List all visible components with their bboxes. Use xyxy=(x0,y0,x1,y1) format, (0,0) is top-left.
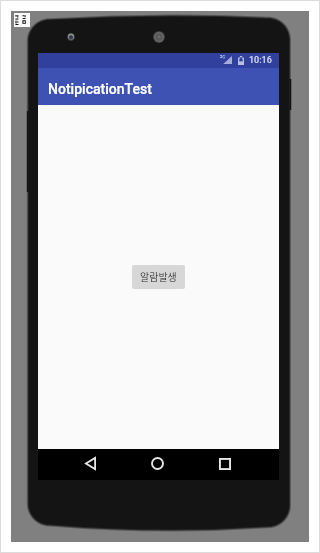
staticText: 알람발생 xyxy=(140,269,177,283)
button[interactable]: Back xyxy=(75,449,105,478)
button[interactable]: Home xyxy=(142,449,172,478)
button[interactable]: Recents xyxy=(210,449,240,478)
staticText: NotipicationTest xyxy=(48,81,152,97)
button[interactable]: 알람발생 xyxy=(132,265,185,289)
staticText: 10:16 xyxy=(249,55,272,66)
